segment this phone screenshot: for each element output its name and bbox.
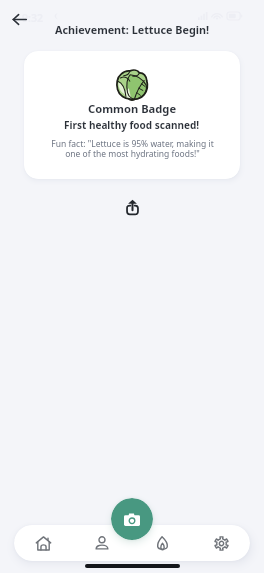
button[interactable]: Settings <box>203 525 239 561</box>
staticText: Achievement: Lettuce Begin! <box>55 22 210 37</box>
button[interactable]: Common Badge <box>24 51 240 179</box>
button[interactable]: Scan food <box>111 498 153 540</box>
staticText: First healthy food scanned! <box>64 118 200 132</box>
staticText: Common Badge <box>88 101 177 116</box>
staticText: Fun fact: "Lettuce is 95% water, making … <box>51 138 214 159</box>
staticText: 9:32 <box>22 11 43 25</box>
button[interactable]: Profile <box>84 525 120 561</box>
button[interactable]: Streak <box>144 525 180 561</box>
button[interactable]: Home <box>25 525 61 561</box>
button[interactable]: Share <box>117 192 147 222</box>
button[interactable]: Back <box>6 6 32 32</box>
